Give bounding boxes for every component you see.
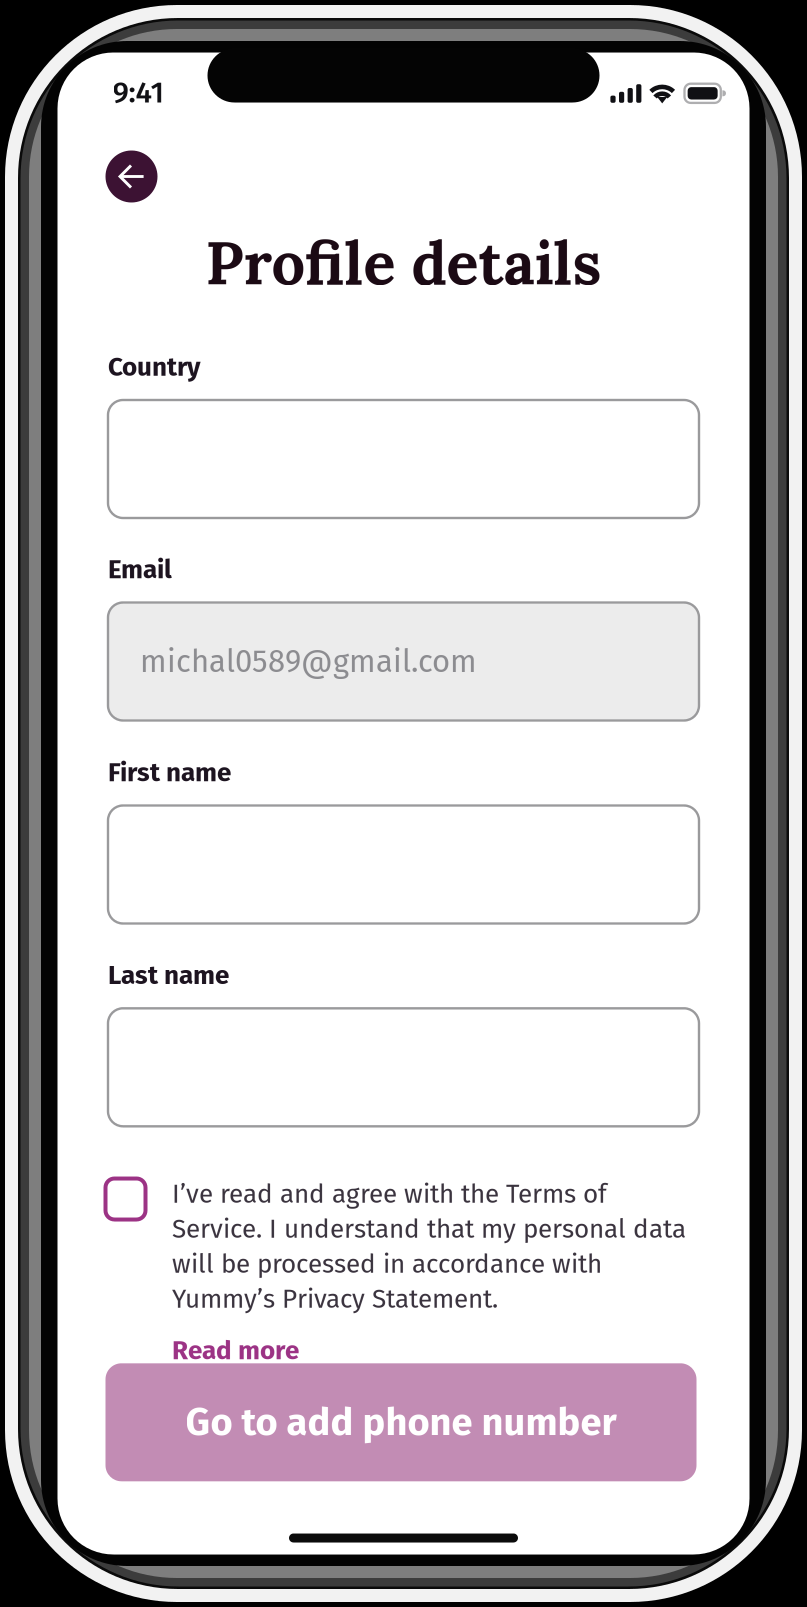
staticText: 9:41 [112,74,164,110]
button[interactable]: Agree to terms [105,1178,145,1219]
staticText: Go to add phone number [185,1399,616,1445]
staticText: I’ve read and agree with the Terms of Se… [172,1178,686,1315]
staticText: Profile details [205,224,601,301]
staticText: Email [108,554,172,585]
staticText: Country [108,351,200,383]
staticText: Read more [172,1335,299,1366]
staticText: First name [108,757,231,788]
staticText: michal0589@gmail.com [140,643,477,680]
button[interactable]: Read more [172,1333,372,1367]
staticText: Last name [108,960,229,991]
button[interactable]: Go to add phone number [105,1363,696,1481]
button[interactable]: Back [105,150,157,202]
